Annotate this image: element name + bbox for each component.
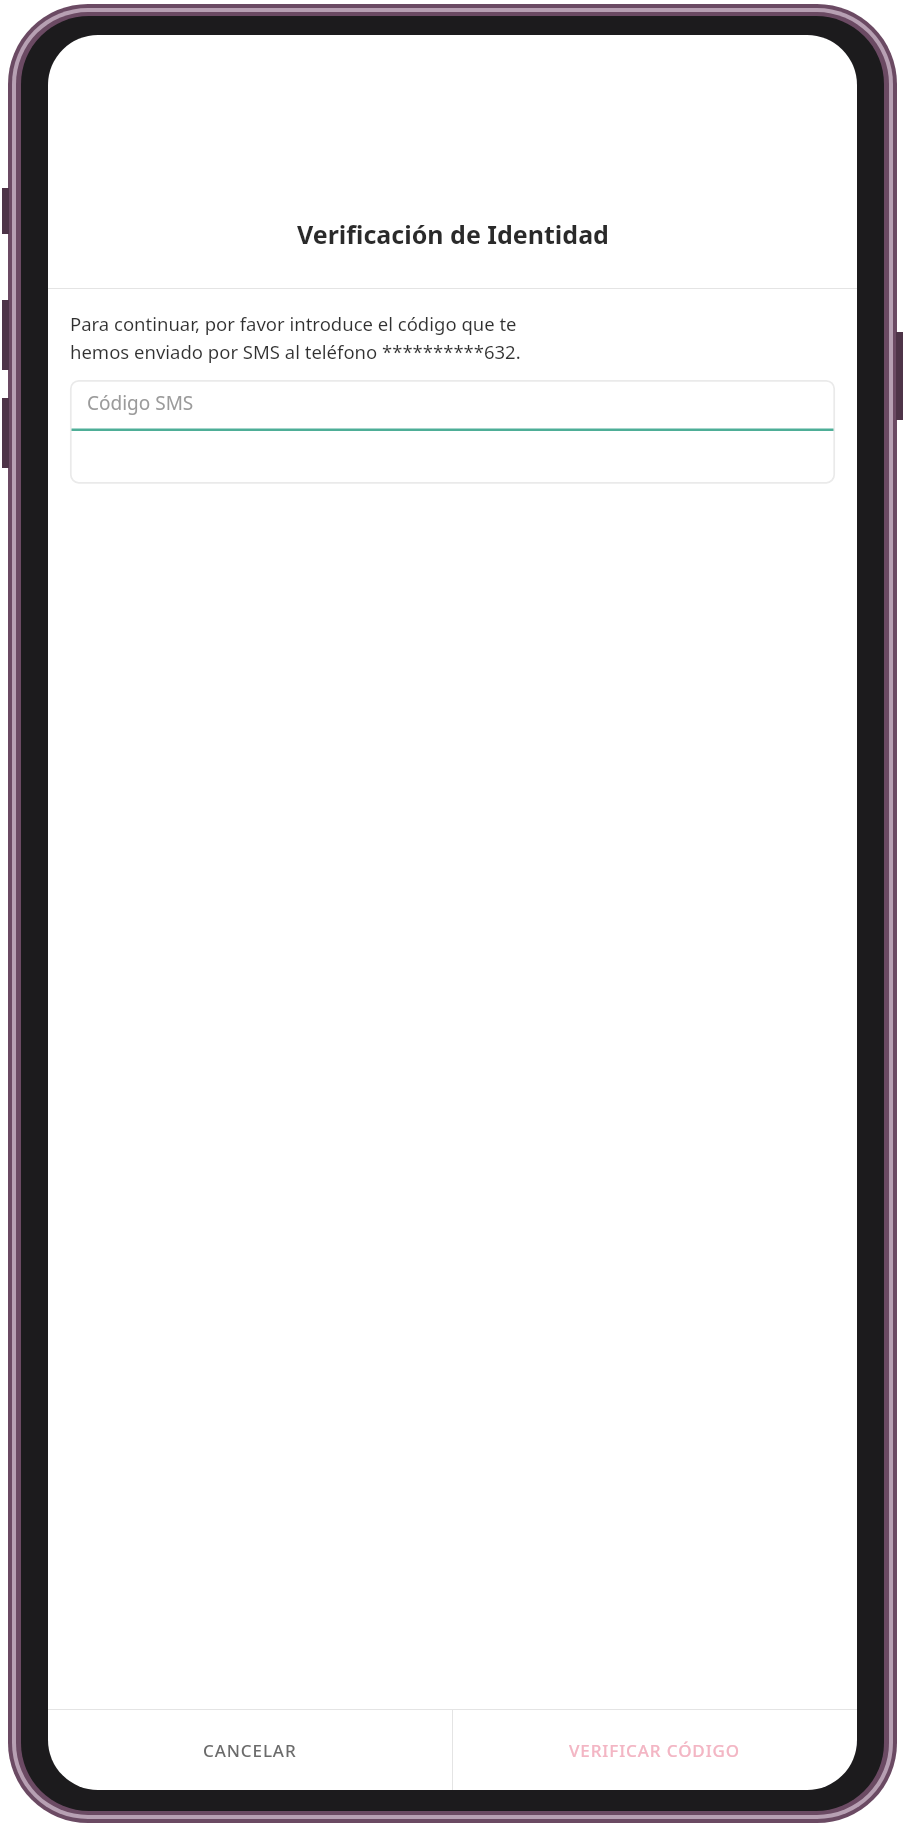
- button[interactable]: Código SMS: [70, 380, 835, 431]
- staticText: VERIFICAR CÓDIGO: [569, 1739, 741, 1762]
- staticText: Verificación de Identidad: [297, 217, 609, 251]
- staticText: CANCELAR: [203, 1739, 297, 1762]
- button[interactable]: CANCELAR: [48, 1710, 452, 1790]
- staticText: Código SMS: [87, 390, 194, 416]
- staticText: Para continuar, por favor introduce el c…: [70, 311, 517, 336]
- button[interactable]: VERIFICAR CÓDIGO: [453, 1710, 857, 1790]
- staticText: hemos enviado por SMS al teléfono ******…: [70, 339, 521, 364]
